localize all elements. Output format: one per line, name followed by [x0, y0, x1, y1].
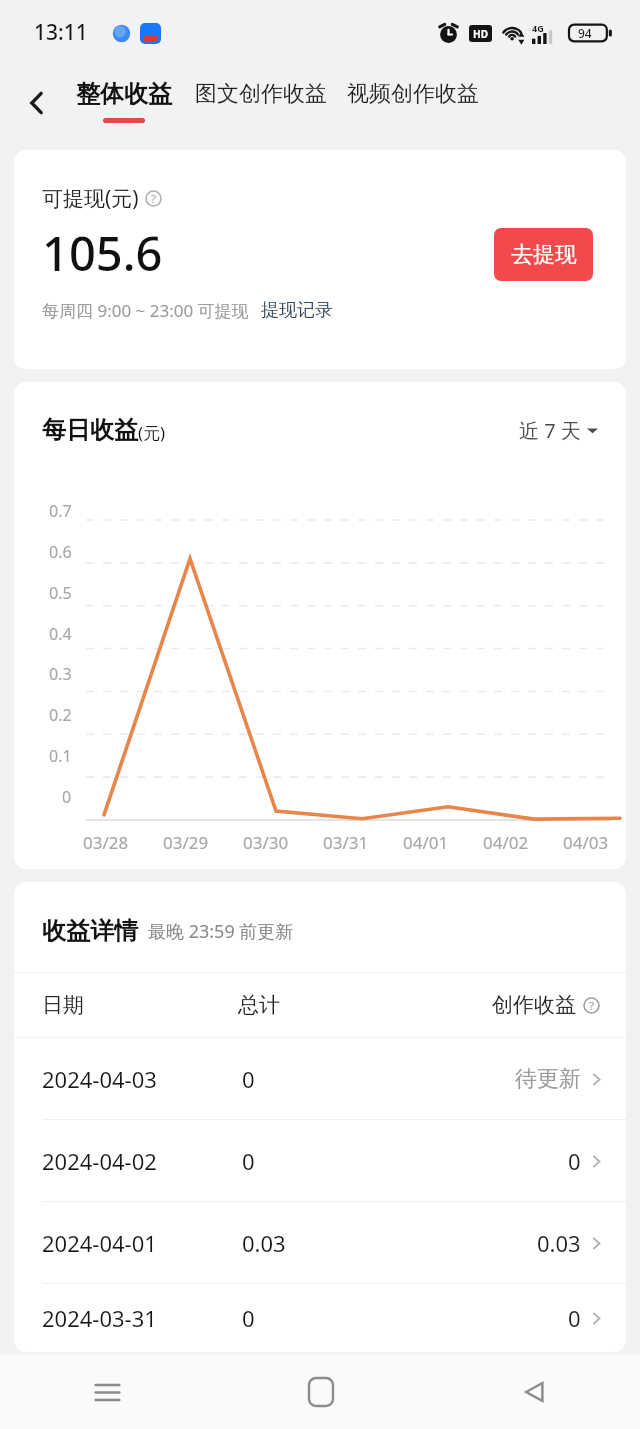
staticText: 0 [568, 1146, 581, 1176]
staticText: 0.03 [537, 1228, 581, 1258]
staticText: 04/03 [563, 831, 609, 854]
staticText: 03/30 [243, 831, 289, 854]
button[interactable]: 2024-03-31 [14, 1284, 626, 1352]
staticText: 4G [532, 22, 544, 34]
staticText: 04/02 [483, 831, 529, 854]
staticText: 每周四 9:00 ~ 23:00 可提现 [42, 299, 249, 322]
staticText: ? [589, 998, 595, 1014]
staticText: 2024-04-02 [42, 1146, 242, 1176]
staticText: 日期 [42, 992, 238, 1018]
staticText: 0.3 [49, 663, 72, 685]
staticText: 0 [242, 1064, 405, 1094]
button[interactable]: 图文创作收益 [195, 87, 327, 115]
button[interactable]: 2024-04-02 [14, 1120, 626, 1201]
button[interactable]: 近 7 天 [519, 417, 598, 444]
staticText: 03/31 [323, 831, 369, 854]
staticText: 94 [578, 25, 592, 41]
staticText: 0 [62, 786, 72, 808]
staticText: 创作收益 [492, 992, 576, 1018]
staticText: 0.1 [49, 745, 72, 767]
staticText: 0.5 [49, 582, 72, 604]
staticText: 收益详情 [42, 916, 138, 946]
staticText: 03/28 [83, 831, 129, 854]
button[interactable]: 2024-04-01 [14, 1202, 626, 1283]
staticText: 0 [568, 1303, 581, 1333]
staticText: HD [473, 27, 488, 41]
staticText: 04/01 [403, 831, 449, 854]
button[interactable]: 整体收益 [76, 79, 172, 123]
button[interactable]: Back [14, 80, 60, 126]
staticText: ? [151, 191, 157, 207]
staticText: 2024-04-03 [42, 1064, 242, 1094]
staticText: 2024-03-31 [42, 1303, 242, 1333]
staticText: (元) [138, 421, 166, 444]
staticText: 0 [242, 1303, 405, 1333]
staticText: 视频创作收益 [347, 80, 479, 108]
staticText: 总计 [238, 992, 404, 1018]
button[interactable]: Back [427, 1355, 640, 1429]
staticText: 近 7 天 [519, 417, 581, 444]
button[interactable]: 视频创作收益 [347, 87, 479, 115]
staticText: 去提现 [511, 241, 577, 269]
staticText: 0.2 [49, 704, 72, 726]
staticText: 0 [242, 1146, 405, 1176]
staticText: 最晚 23:59 前更新 [148, 919, 294, 944]
button[interactable]: Recent apps [0, 1355, 214, 1429]
staticText: 105.6 [42, 221, 163, 285]
staticText: 03/29 [163, 831, 209, 854]
staticText: 整体收益 [76, 79, 172, 109]
staticText: 可提现(元) [42, 184, 139, 213]
button[interactable]: 提现记录 [261, 299, 333, 322]
button[interactable]: Home [214, 1355, 427, 1429]
staticText: 2024-04-01 [42, 1228, 242, 1258]
button[interactable]: 2024-04-03 [14, 1038, 626, 1119]
staticText: 图文创作收益 [195, 80, 327, 108]
staticText: 0.7 [49, 500, 72, 522]
button[interactable]: 去提现 [494, 228, 593, 281]
staticText: 13:11 [34, 18, 88, 47]
staticText: 提现记录 [261, 299, 333, 322]
staticText: 待更新 [515, 1065, 581, 1093]
staticText: 0.4 [49, 623, 72, 645]
staticText: 0.03 [242, 1228, 405, 1258]
staticText: 每日收益 [42, 415, 138, 445]
staticText: 0.6 [49, 541, 72, 563]
